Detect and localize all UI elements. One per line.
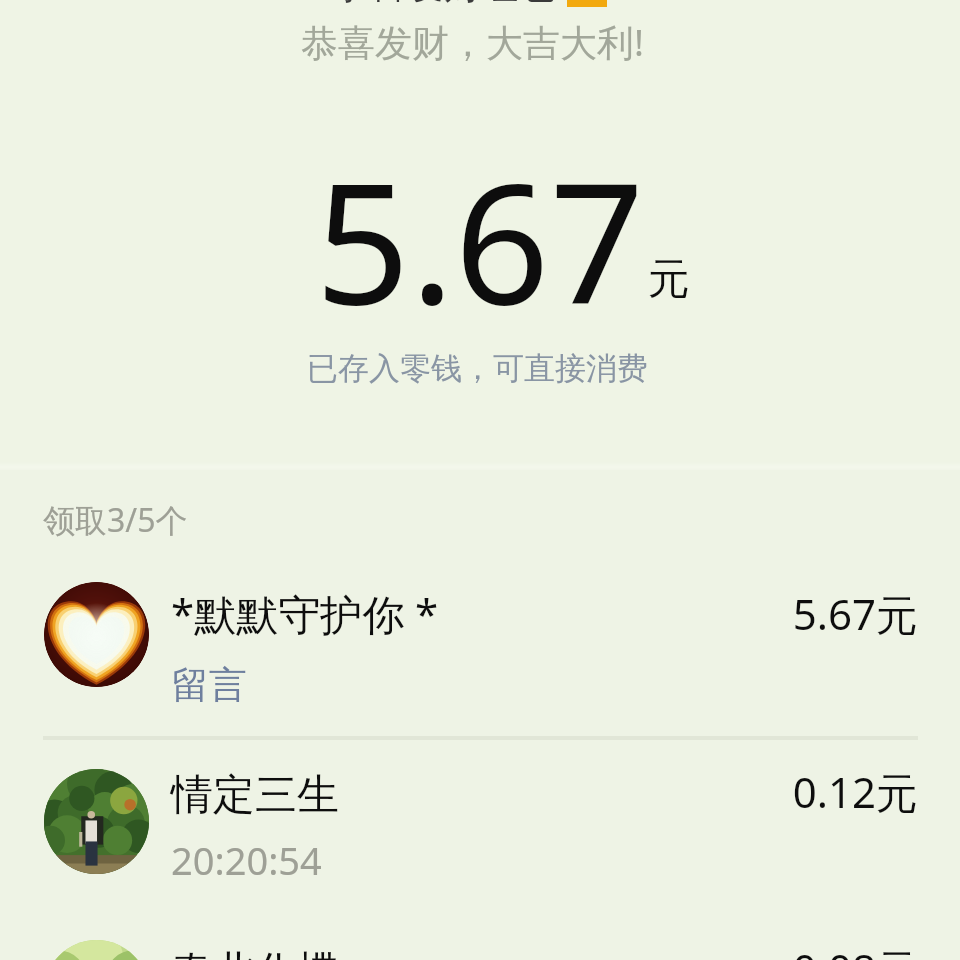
- staticText: 情定三生: [171, 769, 339, 822]
- staticText: 春北化蝶: [171, 946, 339, 960]
- button[interactable]: Avatar of 情定三生: [0, 763, 960, 933]
- staticText: 0.08元: [518, 940, 918, 960]
- staticText: 领取3/5个: [43, 498, 188, 542]
- other: Avatar of 情定三生: [44, 769, 149, 874]
- staticText: *默默守护你 *: [171, 585, 439, 642]
- other: Avatar of *默默守护你 *: [44, 582, 149, 687]
- staticText: 恭喜发财红包: [333, 0, 555, 9]
- button[interactable]: Avatar of *默默守护你 *: [0, 585, 960, 755]
- button[interactable]: Avatar of 春北化蝶: [0, 940, 960, 960]
- staticText: 恭喜发财，大吉大利!: [301, 16, 644, 67]
- button[interactable]: Sender: [333, 0, 607, 9]
- staticText: 留言: [171, 661, 247, 709]
- staticText: 20:20:54: [171, 834, 322, 886]
- other: Avatar of 春北化蝶: [44, 940, 149, 960]
- staticText: 元: [648, 253, 690, 306]
- staticText: 5.67元: [518, 585, 918, 642]
- staticText: 0.12元: [518, 763, 918, 820]
- button[interactable]: 已存入零钱，可直接消费: [307, 349, 648, 388]
- staticText: 5.67: [315, 127, 645, 353]
- staticText: 已存入零钱，可直接消费: [307, 349, 648, 388]
